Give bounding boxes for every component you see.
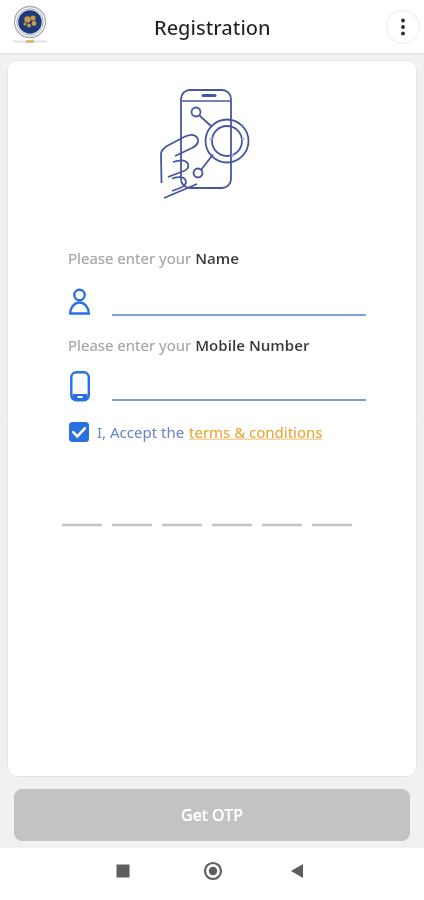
- staticText: Get OTP: [181, 804, 243, 826]
- staticText: Please enter your Mobile Number: [68, 335, 310, 355]
- button[interactable]: [11, 5, 49, 43]
- button[interactable]: terms & conditions: [189, 422, 323, 442]
- button[interactable]: [279, 853, 315, 889]
- button[interactable]: [195, 853, 231, 889]
- button[interactable]: I, Accept the: [69, 422, 323, 442]
- staticText: Please enter your Name: [68, 248, 240, 268]
- staticText: I, Accept the: [97, 422, 189, 442]
- button[interactable]: Get OTP: [14, 789, 410, 841]
- staticText: Registration: [154, 14, 271, 41]
- button[interactable]: [105, 853, 141, 889]
- button[interactable]: [386, 10, 420, 44]
